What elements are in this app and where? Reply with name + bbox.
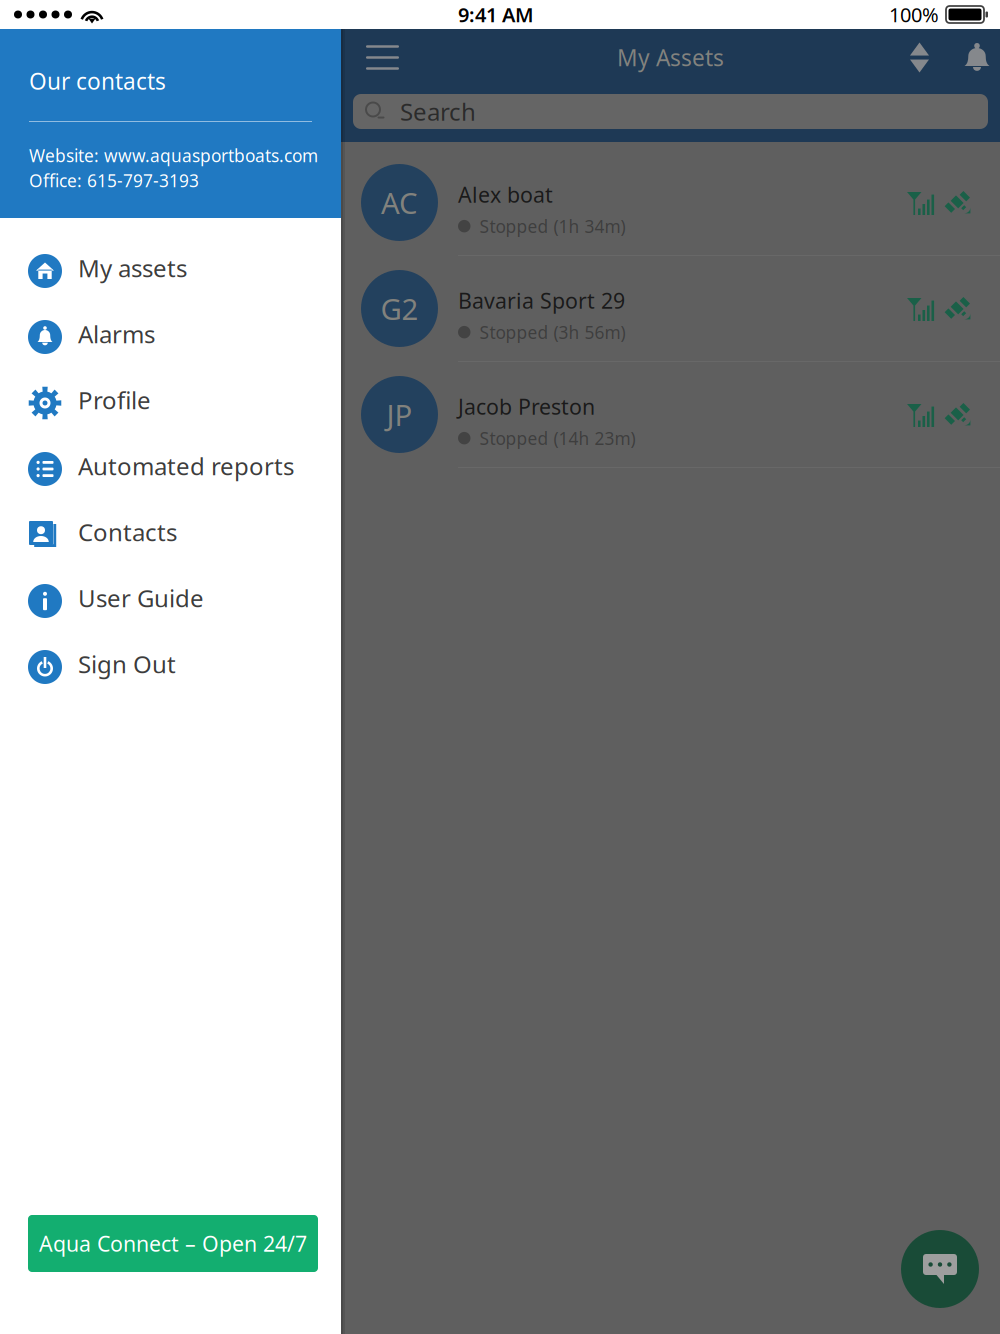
- button[interactable]: Alarms: [0, 304, 341, 370]
- button[interactable]: G2: [341, 256, 1000, 361]
- staticText: 100%: [889, 1, 939, 28]
- button[interactable]: Aqua Connect – Open 24/7: [28, 1215, 318, 1272]
- button[interactable]: AC: [341, 150, 1000, 255]
- button[interactable]: Sign Out: [0, 634, 341, 700]
- staticText: Office: 615-797-3193: [29, 169, 199, 192]
- button[interactable]: JP: [341, 362, 1000, 467]
- staticText: 9:41 AM: [458, 1, 534, 28]
- button[interactable]: Search: [341, 94, 1000, 142]
- staticText: G2: [380, 289, 418, 328]
- button[interactable]: User Guide: [0, 568, 341, 634]
- staticText: Alex boat: [458, 180, 553, 209]
- staticText: User Guide: [78, 582, 204, 614]
- button[interactable]: Sort: [884, 29, 955, 94]
- staticText: JP: [386, 395, 412, 434]
- staticText: Automated reports: [78, 450, 294, 482]
- staticText: Bavaria Sport 29: [458, 286, 625, 315]
- staticText: Aqua Connect – Open 24/7: [39, 1229, 307, 1258]
- staticText: Sign Out: [78, 648, 176, 680]
- staticText: Stopped (14h 23m): [479, 427, 635, 450]
- staticText: My Assets: [617, 42, 724, 72]
- staticText: Alarms: [78, 318, 155, 350]
- staticText: Jacob Preston: [458, 392, 595, 421]
- staticText: Contacts: [78, 516, 177, 548]
- button[interactable]: Contacts: [0, 502, 341, 568]
- staticText: Search: [400, 96, 476, 127]
- staticText: Stopped (1h 34m): [479, 215, 625, 238]
- button[interactable]: Notifications: [955, 29, 1000, 94]
- staticText: AC: [381, 183, 418, 222]
- button[interactable]: Menu: [341, 29, 419, 94]
- staticText: Stopped (3h 56m): [479, 321, 625, 344]
- staticText: Profile: [78, 384, 151, 416]
- staticText: My assets: [78, 252, 187, 284]
- staticText: Our contacts: [29, 66, 166, 96]
- button[interactable]: My assets: [0, 238, 341, 304]
- button[interactable]: Profile: [0, 370, 341, 436]
- button[interactable]: Chat: [901, 1230, 979, 1308]
- button[interactable]: Automated reports: [0, 436, 341, 502]
- staticText: Website: www.aquasportboats.com: [29, 144, 318, 167]
